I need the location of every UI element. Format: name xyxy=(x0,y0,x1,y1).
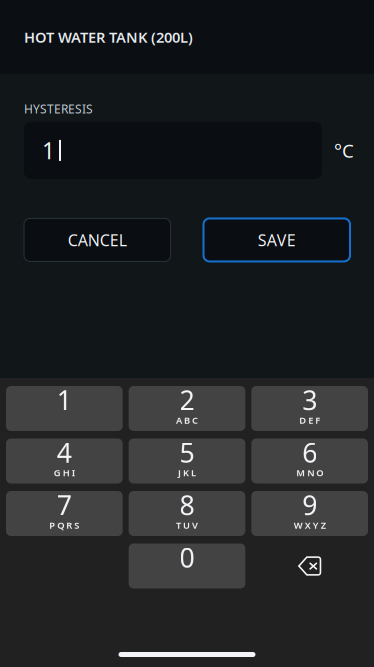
button[interactable]: 7 xyxy=(6,491,123,536)
staticText: W X Y Z xyxy=(294,519,326,531)
button[interactable]: CANCEL xyxy=(24,218,170,261)
staticText: 8 xyxy=(179,487,194,523)
button[interactable]: SAVE xyxy=(203,218,350,261)
button[interactable]: 5 xyxy=(129,438,245,483)
staticText: G H I xyxy=(54,466,75,479)
button[interactable]: 3 xyxy=(251,386,368,431)
button[interactable]: Delete xyxy=(251,543,368,588)
staticText: 4 xyxy=(57,435,72,470)
button[interactable]: 0 xyxy=(129,543,245,588)
button[interactable]: 1 xyxy=(6,386,123,431)
staticText: P Q R S xyxy=(49,519,79,531)
staticText: 7 xyxy=(57,487,72,523)
staticText: 3 xyxy=(302,382,317,418)
staticText: SAVE xyxy=(258,229,296,250)
staticText: 1 xyxy=(42,135,55,165)
staticText: M N O xyxy=(296,466,323,479)
staticText: °C xyxy=(334,138,354,163)
staticText: 5 xyxy=(179,435,194,470)
button[interactable]: 4 xyxy=(6,438,123,483)
staticText: HOT WATER TANK (200L) xyxy=(24,27,193,47)
staticText: CANCEL xyxy=(68,229,127,250)
button[interactable]: 8 xyxy=(129,491,245,536)
staticText: J K L xyxy=(178,466,196,479)
staticText: A B C xyxy=(176,414,198,426)
staticText: HYSTERESIS xyxy=(24,101,93,117)
staticText: 1 xyxy=(57,382,72,418)
staticText: 6 xyxy=(302,435,317,470)
button[interactable]: 2 xyxy=(129,386,245,431)
staticText: D E F xyxy=(299,414,320,426)
staticText: T U V xyxy=(176,519,198,531)
button[interactable]: 6 xyxy=(251,438,368,483)
staticText: 2 xyxy=(179,382,194,418)
button[interactable]: 9 xyxy=(251,491,368,536)
staticText: 0 xyxy=(179,540,194,575)
staticText: 9 xyxy=(302,487,317,523)
